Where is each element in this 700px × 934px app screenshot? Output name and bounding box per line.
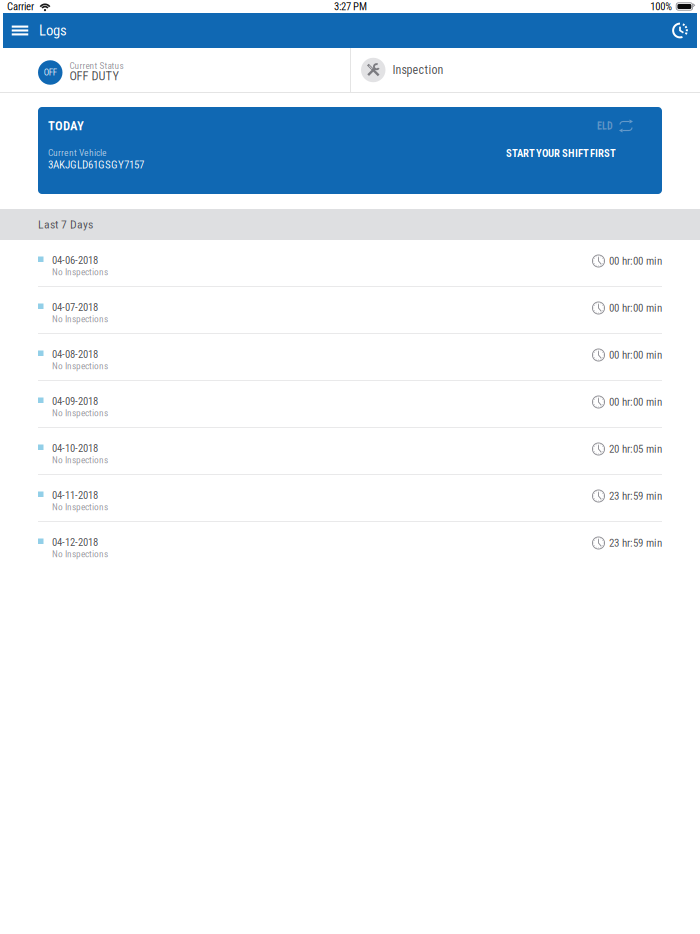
button[interactable]: OFF [0,48,350,92]
staticText: 04-11-2018 [52,489,98,501]
staticText: No Inspections [52,407,108,418]
staticText: 04-08-2018 [52,348,98,360]
button[interactable]: Menu [3,13,35,48]
staticText: 00 hr:00 min [609,396,662,408]
staticText: Inspection [392,63,443,77]
button[interactable]: 04-11-2018 [0,475,700,522]
staticText: 00 hr:00 min [609,302,662,314]
staticText: OFF DUTY [69,69,119,83]
staticText: 23 hr:59 min [609,490,662,502]
staticText: Logs [39,22,67,39]
staticText: 3:27 PM [334,0,367,13]
staticText: Current Vehicle [48,147,107,158]
button[interactable]: Inspection [351,48,700,92]
staticText: 04-09-2018 [52,395,98,407]
staticText: ELD [597,120,613,132]
staticText: No Inspections [52,548,108,559]
staticText: 04-12-2018 [52,536,98,548]
staticText: 20 hr:05 min [609,443,662,455]
staticText: START YOUR SHIFT FIRST [506,147,616,159]
staticText: 04-10-2018 [52,442,98,454]
staticText: 23 hr:59 min [609,537,662,549]
staticText: 100% [650,0,672,13]
staticText: 04-06-2018 [52,254,98,266]
button[interactable]: 04-08-2018 [0,334,700,381]
staticText: No Inspections [52,454,108,465]
staticText: 00 hr:00 min [609,255,662,267]
staticText: 00 hr:00 min [609,349,662,361]
staticText: 04-07-2018 [52,301,98,313]
button[interactable]: Hours of service timer [664,13,697,48]
staticText: Current Status [69,60,123,71]
staticText: No Inspections [52,266,108,277]
staticText: OFF [44,67,57,78]
button[interactable]: 04-07-2018 [0,287,700,334]
staticText: No Inspections [52,501,108,512]
button[interactable]: 04-09-2018 [0,381,700,428]
staticText: TODAY [48,119,84,133]
button[interactable]: 04-10-2018 [0,428,700,475]
staticText: No Inspections [52,313,108,324]
staticText: No Inspections [52,360,108,371]
staticText: 3AKJGLD61GSGY7157 [48,158,144,171]
staticText: Last 7 Days [38,218,93,231]
button[interactable]: 04-06-2018 [0,240,700,287]
button[interactable]: 04-12-2018 [0,522,700,569]
staticText: Carrier [7,0,34,13]
